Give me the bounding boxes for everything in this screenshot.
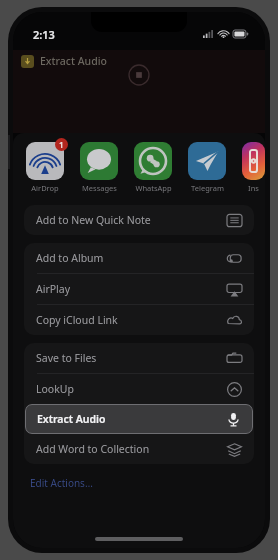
staticText: Save to Files bbox=[36, 351, 97, 365]
button[interactable]: AirPlay bbox=[24, 274, 254, 304]
button[interactable]: Save to Files bbox=[24, 343, 254, 373]
staticText: WhatsApp bbox=[135, 183, 172, 193]
button[interactable]: Add to Album bbox=[24, 243, 254, 273]
button[interactable]: LookUp bbox=[24, 374, 254, 404]
button[interactable]: Edit Actions… bbox=[13, 474, 265, 494]
staticText: AirPlay bbox=[36, 282, 71, 296]
staticText: Edit Actions… bbox=[30, 476, 93, 490]
staticText: 2:13 bbox=[33, 27, 55, 42]
staticText: Telegram bbox=[191, 183, 224, 193]
staticText: Extract Audio bbox=[37, 412, 106, 426]
staticText: Add Word to Collection bbox=[36, 442, 150, 456]
staticText: AirDrop bbox=[31, 183, 59, 193]
staticText: Add to New Quick Note bbox=[36, 213, 151, 227]
staticText: Ins bbox=[248, 183, 259, 193]
button[interactable]: Extract Audio bbox=[25, 404, 253, 434]
staticText: Copy iCloud Link bbox=[36, 313, 118, 327]
button[interactable]: Copy iCloud Link bbox=[24, 305, 254, 335]
button[interactable]: Add to New Quick Note bbox=[24, 205, 254, 235]
staticText: LookUp bbox=[36, 382, 74, 396]
button[interactable]: WhatsApp bbox=[134, 142, 172, 193]
staticText: 1 bbox=[59, 139, 64, 150]
staticText: Add to Album bbox=[36, 251, 104, 265]
button[interactable]: 1 bbox=[26, 142, 64, 193]
button[interactable]: Ins bbox=[242, 142, 265, 193]
button[interactable]: Messages bbox=[80, 142, 118, 193]
staticText: Messages bbox=[82, 183, 117, 193]
staticText: Extract Audio bbox=[40, 54, 107, 68]
button[interactable]: Add Word to Collection bbox=[24, 434, 254, 464]
button[interactable]: Telegram bbox=[188, 142, 226, 193]
